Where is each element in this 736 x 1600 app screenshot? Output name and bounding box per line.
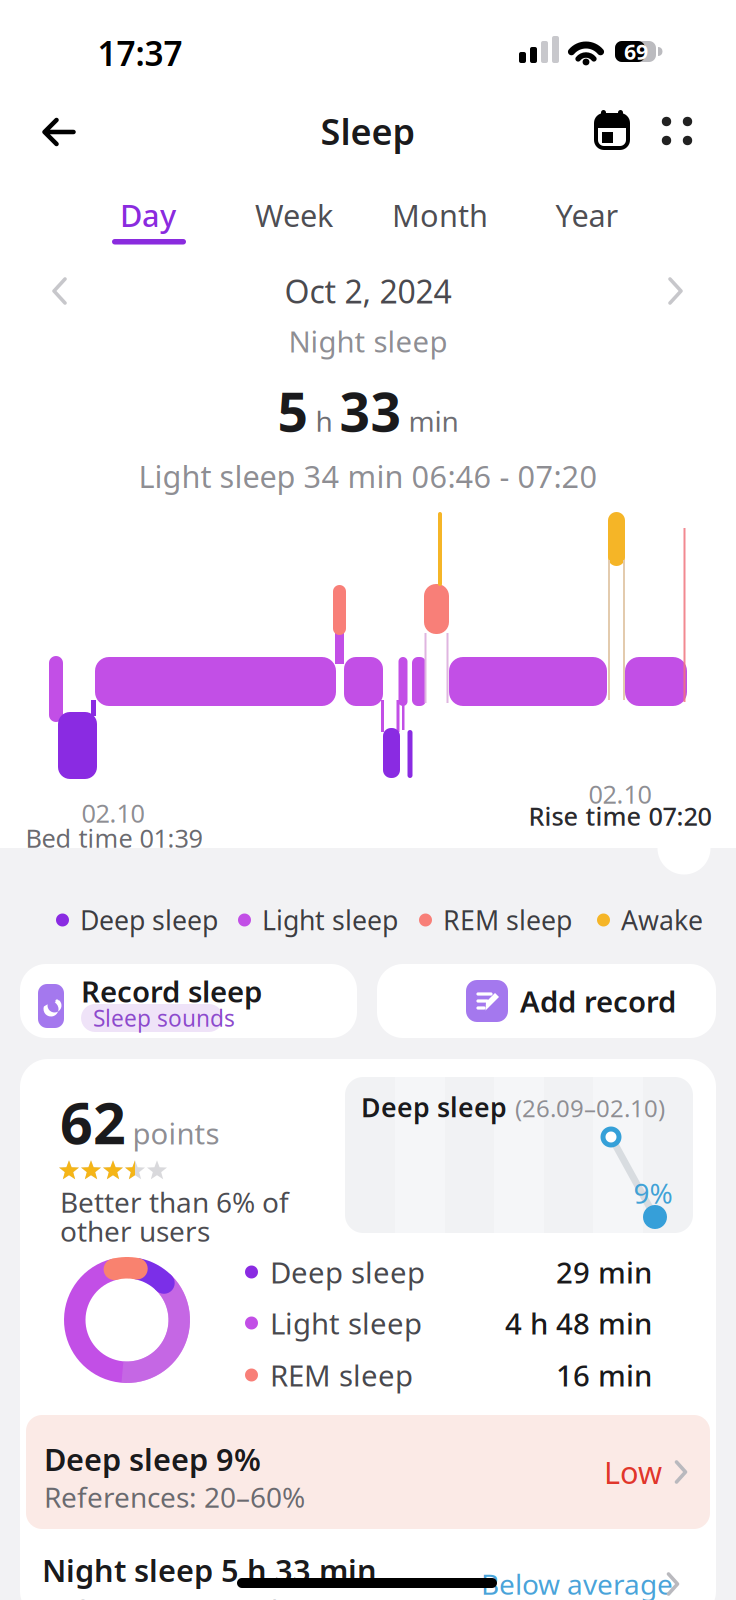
button[interactable]: Back [41, 115, 76, 149]
staticText: 62 [60, 1084, 126, 1160]
staticText: Awake [621, 902, 703, 938]
staticText: Better than 6% of [60, 1183, 289, 1221]
staticText: 33 [339, 376, 401, 446]
button[interactable]: Week [239, 193, 349, 237]
staticText: 29 min [556, 1252, 652, 1291]
staticText: Light sleep [262, 902, 398, 938]
staticText: Low [604, 1452, 662, 1492]
staticText: Below average [481, 1565, 673, 1600]
staticText: Light sleep 34 min 06:46 - 07:20 [138, 456, 597, 496]
button[interactable]: Month [385, 193, 495, 237]
button[interactable]: Day [93, 193, 203, 237]
staticText: Day [120, 195, 176, 235]
button[interactable]: Record sleep [20, 964, 357, 1038]
staticText: min [408, 402, 458, 439]
staticText: (26.09–02.10) [515, 1092, 665, 1124]
staticText: 69 [624, 37, 648, 66]
button[interactable]: Deep sleep 9% [26, 1415, 710, 1529]
staticText: REM sleep [270, 1355, 413, 1394]
staticText: Add record [520, 981, 676, 1020]
button[interactable]: More [661, 116, 692, 145]
staticText: 16 min [556, 1355, 652, 1394]
staticText: 02.10 [588, 777, 651, 811]
staticText: Deep sleep [270, 1252, 425, 1291]
staticText: Deep sleep [361, 1089, 507, 1125]
staticText: Deep sleep [80, 902, 218, 938]
staticText: Record sleep [81, 971, 262, 1010]
button[interactable]: Calendar [594, 110, 630, 150]
staticText: h [315, 402, 332, 439]
button[interactable]: Add record [377, 964, 716, 1038]
staticText: 02.10 [81, 796, 144, 830]
staticText: Deep sleep 9% [44, 1439, 261, 1479]
staticText: Year [555, 195, 618, 235]
staticText: other users [60, 1212, 210, 1250]
button[interactable]: Next day [667, 277, 683, 305]
button[interactable]: Year [532, 193, 642, 237]
staticText: Month [392, 195, 488, 235]
staticText: References: 20–60% [44, 1478, 305, 1516]
staticText: Rise time 07:20 [528, 799, 711, 833]
staticText: points [132, 1113, 219, 1152]
staticText: 17:37 [97, 31, 182, 75]
staticText: Sleep sounds [93, 1003, 235, 1033]
staticText: Light sleep [270, 1303, 422, 1342]
staticText: 4 h 48 min [505, 1303, 652, 1342]
staticText: REM sleep [443, 902, 572, 938]
staticText: 5 [277, 376, 308, 446]
staticText: Night sleep 5 h 33 min [42, 1550, 377, 1590]
staticText: Oct 2, 2024 [284, 270, 451, 312]
button[interactable]: Night sleep 5 h 33 min [32, 1545, 704, 1600]
button[interactable]: Previous day [52, 277, 68, 305]
staticText: Week [255, 195, 333, 235]
staticText: 9% [633, 1174, 672, 1212]
staticText: Sleep [320, 107, 415, 155]
staticText: Bed time 01:39 [25, 821, 202, 855]
staticText: Night sleep [288, 321, 447, 360]
